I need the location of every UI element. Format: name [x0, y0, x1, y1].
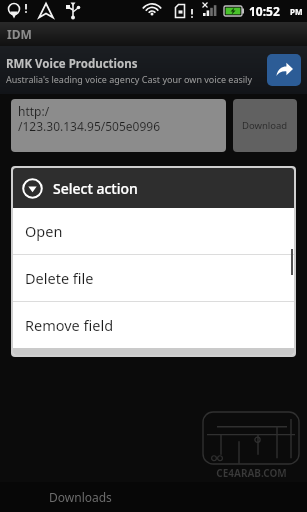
- staticText: Downloads: [49, 489, 112, 505]
- button[interactable]: RMK Voice Productions: [0, 46, 307, 94]
- button[interactable]: http:/ /123.30.134.95/505e0996: [11, 99, 226, 152]
- button[interactable]: Download: [233, 99, 297, 152]
- staticText: IDM: [7, 26, 32, 42]
- staticText: Select action: [53, 179, 138, 198]
- staticText: Download: [242, 119, 288, 132]
- staticText: Remove field: [25, 315, 114, 335]
- button[interactable]: Remove field: [13, 302, 294, 348]
- staticText: Delete file: [25, 268, 94, 288]
- staticText: http:/ /123.30.134.95/505e0996: [18, 103, 161, 134]
- button[interactable]: Downloads: [0, 482, 160, 512]
- staticText: CE4ARAB.COM: [216, 466, 287, 480]
- staticText: RMK Voice Productions: [6, 56, 138, 72]
- button[interactable]: Share: [267, 54, 301, 86]
- button[interactable]: Delete file: [13, 255, 294, 301]
- button[interactable]: Open: [13, 208, 294, 254]
- staticText: Australia's leading voice agency Cast yo…: [6, 73, 253, 85]
- staticText: Open: [25, 221, 63, 241]
- staticText: PM: [290, 6, 303, 17]
- staticText: 10:52: [249, 3, 280, 19]
